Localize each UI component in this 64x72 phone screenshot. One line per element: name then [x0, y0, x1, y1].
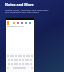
- staticText: Notes and More: [5, 2, 34, 7]
- staticText: Create notes, checklists and reminders a…: [5, 8, 49, 14]
- staticText: Shopping list for: [7, 25, 24, 28]
